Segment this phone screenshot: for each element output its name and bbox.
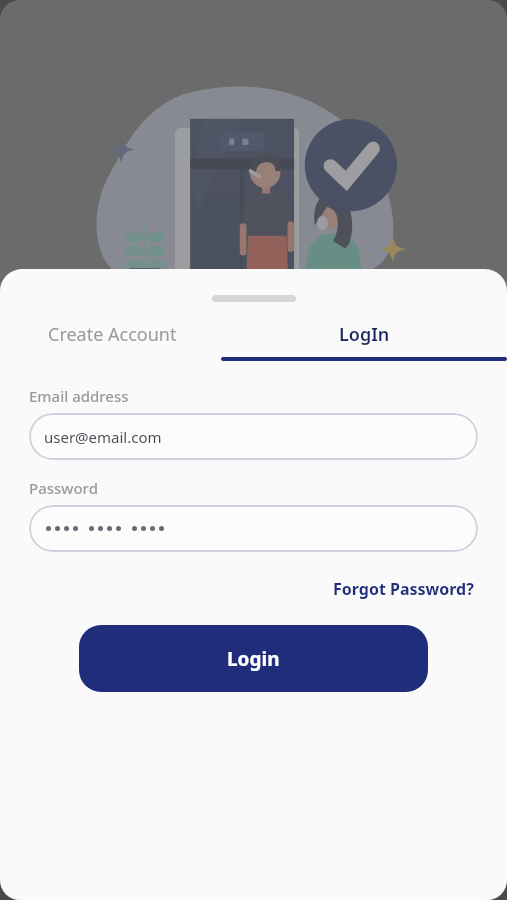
button[interactable] [29, 505, 478, 552]
staticText: Forgot Password? [333, 578, 474, 600]
staticText: user@email.com [44, 427, 162, 447]
staticText: Login [227, 646, 280, 672]
button[interactable]: Create Account [48, 322, 177, 363]
staticText: Create Account [48, 322, 177, 347]
staticText: LogIn [339, 322, 390, 347]
staticText: Password [29, 478, 98, 498]
button[interactable]: user@email.com [29, 413, 478, 460]
button[interactable]: LogIn [221, 322, 507, 361]
staticText: Email address [29, 386, 129, 406]
button[interactable]: Login [79, 625, 428, 692]
button[interactable]: Forgot Password? [329, 574, 478, 604]
